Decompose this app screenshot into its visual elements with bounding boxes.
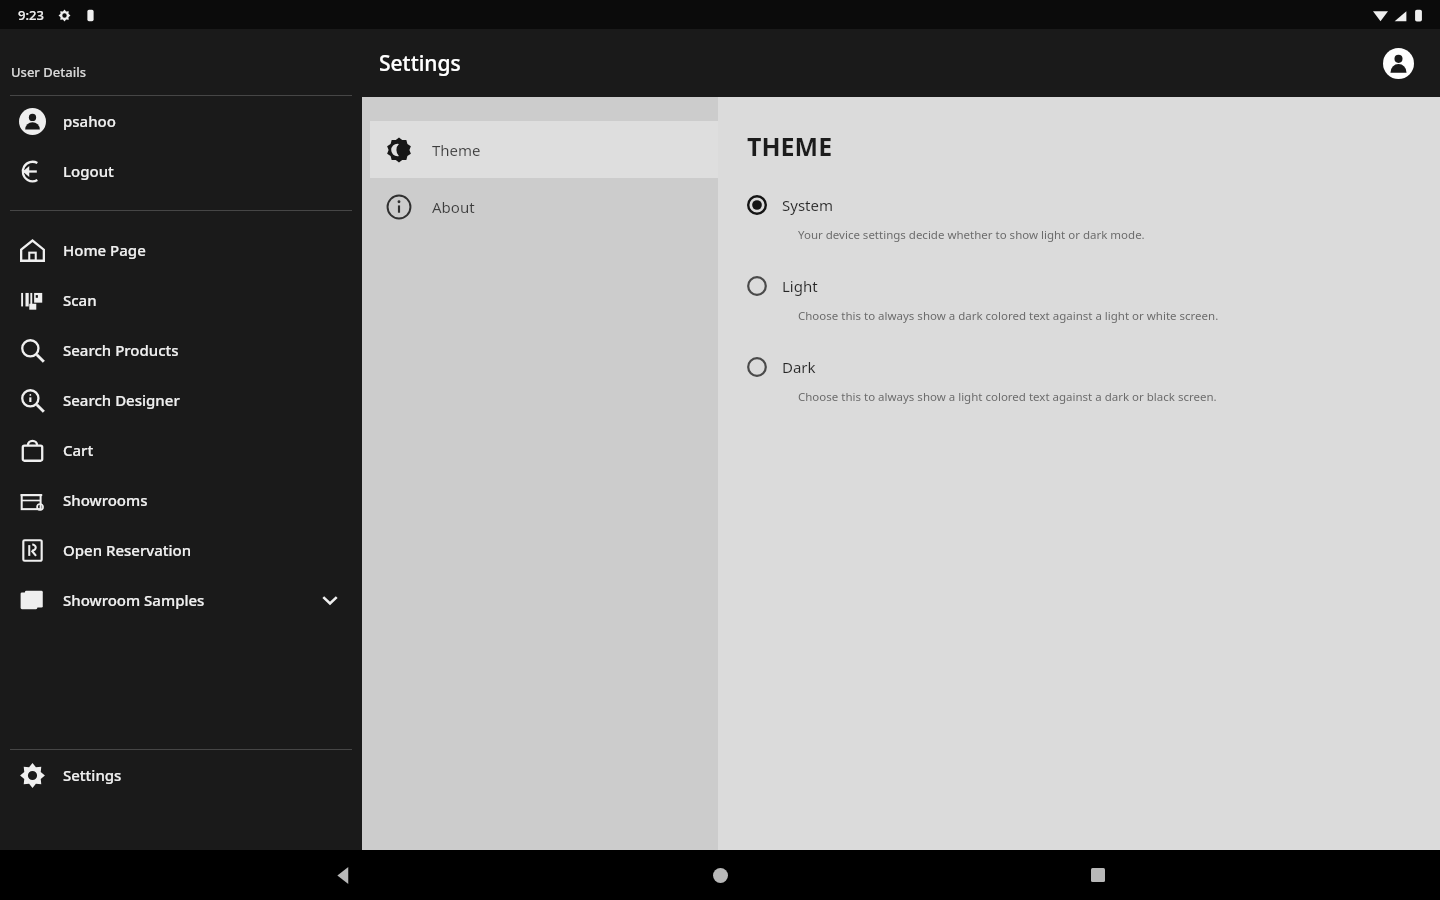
- staticText: Settings: [379, 49, 461, 78]
- staticText: Settings: [63, 765, 122, 785]
- staticText: Choose this to always show a light color…: [798, 389, 1217, 405]
- staticText: Logout: [63, 161, 114, 181]
- button[interactable]: Recent apps: [1063, 850, 1133, 900]
- button[interactable]: Dark: [747, 350, 1440, 431]
- staticText: About: [432, 197, 475, 217]
- button[interactable]: Settings: [0, 750, 362, 800]
- staticText: Search Products: [63, 340, 179, 360]
- staticText: Open Reservation: [63, 540, 192, 560]
- button[interactable]: psahoo: [0, 96, 362, 146]
- button[interactable]: Account: [1376, 41, 1420, 85]
- staticText: Your device settings decide whether to s…: [798, 227, 1145, 243]
- staticText: 9:23: [18, 6, 44, 24]
- button[interactable]: Back: [308, 850, 378, 900]
- staticText: Cart: [63, 440, 94, 460]
- button[interactable]: Logout: [0, 146, 362, 196]
- staticText: Showrooms: [63, 490, 148, 510]
- button[interactable]: Home Page: [0, 225, 362, 275]
- button[interactable]: Search Products: [0, 325, 362, 375]
- staticText: Scan: [63, 290, 97, 310]
- staticText: Showroom Samples: [63, 590, 205, 610]
- staticText: System: [782, 195, 833, 215]
- staticText: Search Designer: [63, 390, 180, 410]
- button[interactable]: Search Designer: [0, 375, 362, 425]
- staticText: User Details: [11, 63, 86, 81]
- staticText: Dark: [782, 357, 816, 377]
- staticText: psahoo: [63, 111, 116, 131]
- button[interactable]: Scan: [0, 275, 362, 325]
- staticText: Home Page: [63, 240, 146, 260]
- button[interactable]: Home: [685, 850, 755, 900]
- button[interactable]: About: [370, 178, 718, 235]
- staticText: Choose this to always show a dark colore…: [798, 308, 1219, 324]
- button[interactable]: System: [747, 188, 1440, 269]
- button[interactable]: Theme: [370, 121, 718, 178]
- staticText: Light: [782, 276, 818, 296]
- button[interactable]: Open Reservation: [0, 525, 362, 575]
- staticText: Theme: [432, 140, 481, 160]
- button[interactable]: Light: [747, 269, 1440, 350]
- button[interactable]: Cart: [0, 425, 362, 475]
- button[interactable]: Showrooms: [0, 475, 362, 525]
- button[interactable]: Showroom Samples: [0, 575, 362, 625]
- staticText: THEME: [747, 129, 833, 163]
